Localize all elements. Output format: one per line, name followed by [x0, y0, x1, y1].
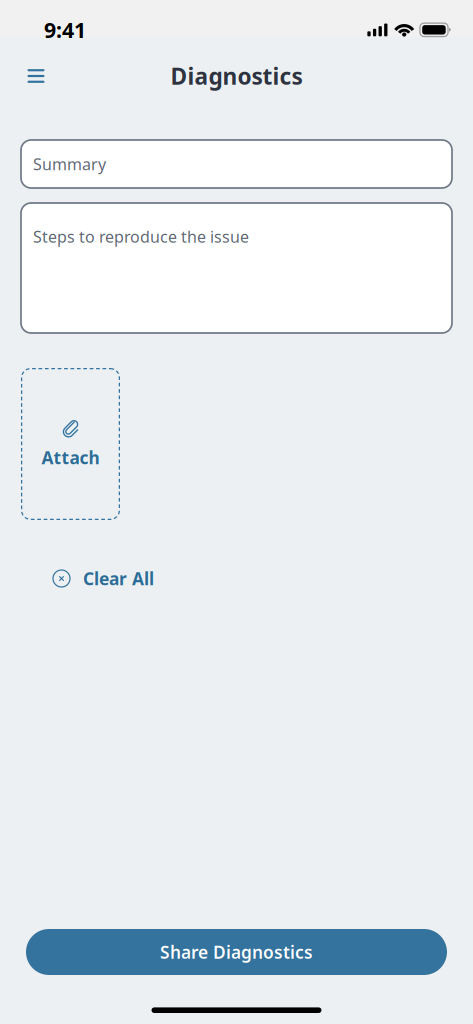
button[interactable]: Share Diagnostics: [26, 929, 447, 975]
button[interactable]: Menu: [14, 54, 58, 98]
staticText: Steps to reproduce the issue: [33, 226, 249, 247]
staticText: Share Diagnostics: [160, 940, 313, 963]
staticText: 9:41: [44, 16, 86, 44]
staticText: Summary: [33, 153, 106, 175]
staticText: Attach: [41, 446, 99, 469]
button[interactable]: Attach: [21, 368, 120, 520]
button[interactable]: Clear All: [43, 558, 164, 599]
staticText: Clear All: [83, 567, 154, 590]
staticText: Diagnostics: [170, 61, 302, 91]
